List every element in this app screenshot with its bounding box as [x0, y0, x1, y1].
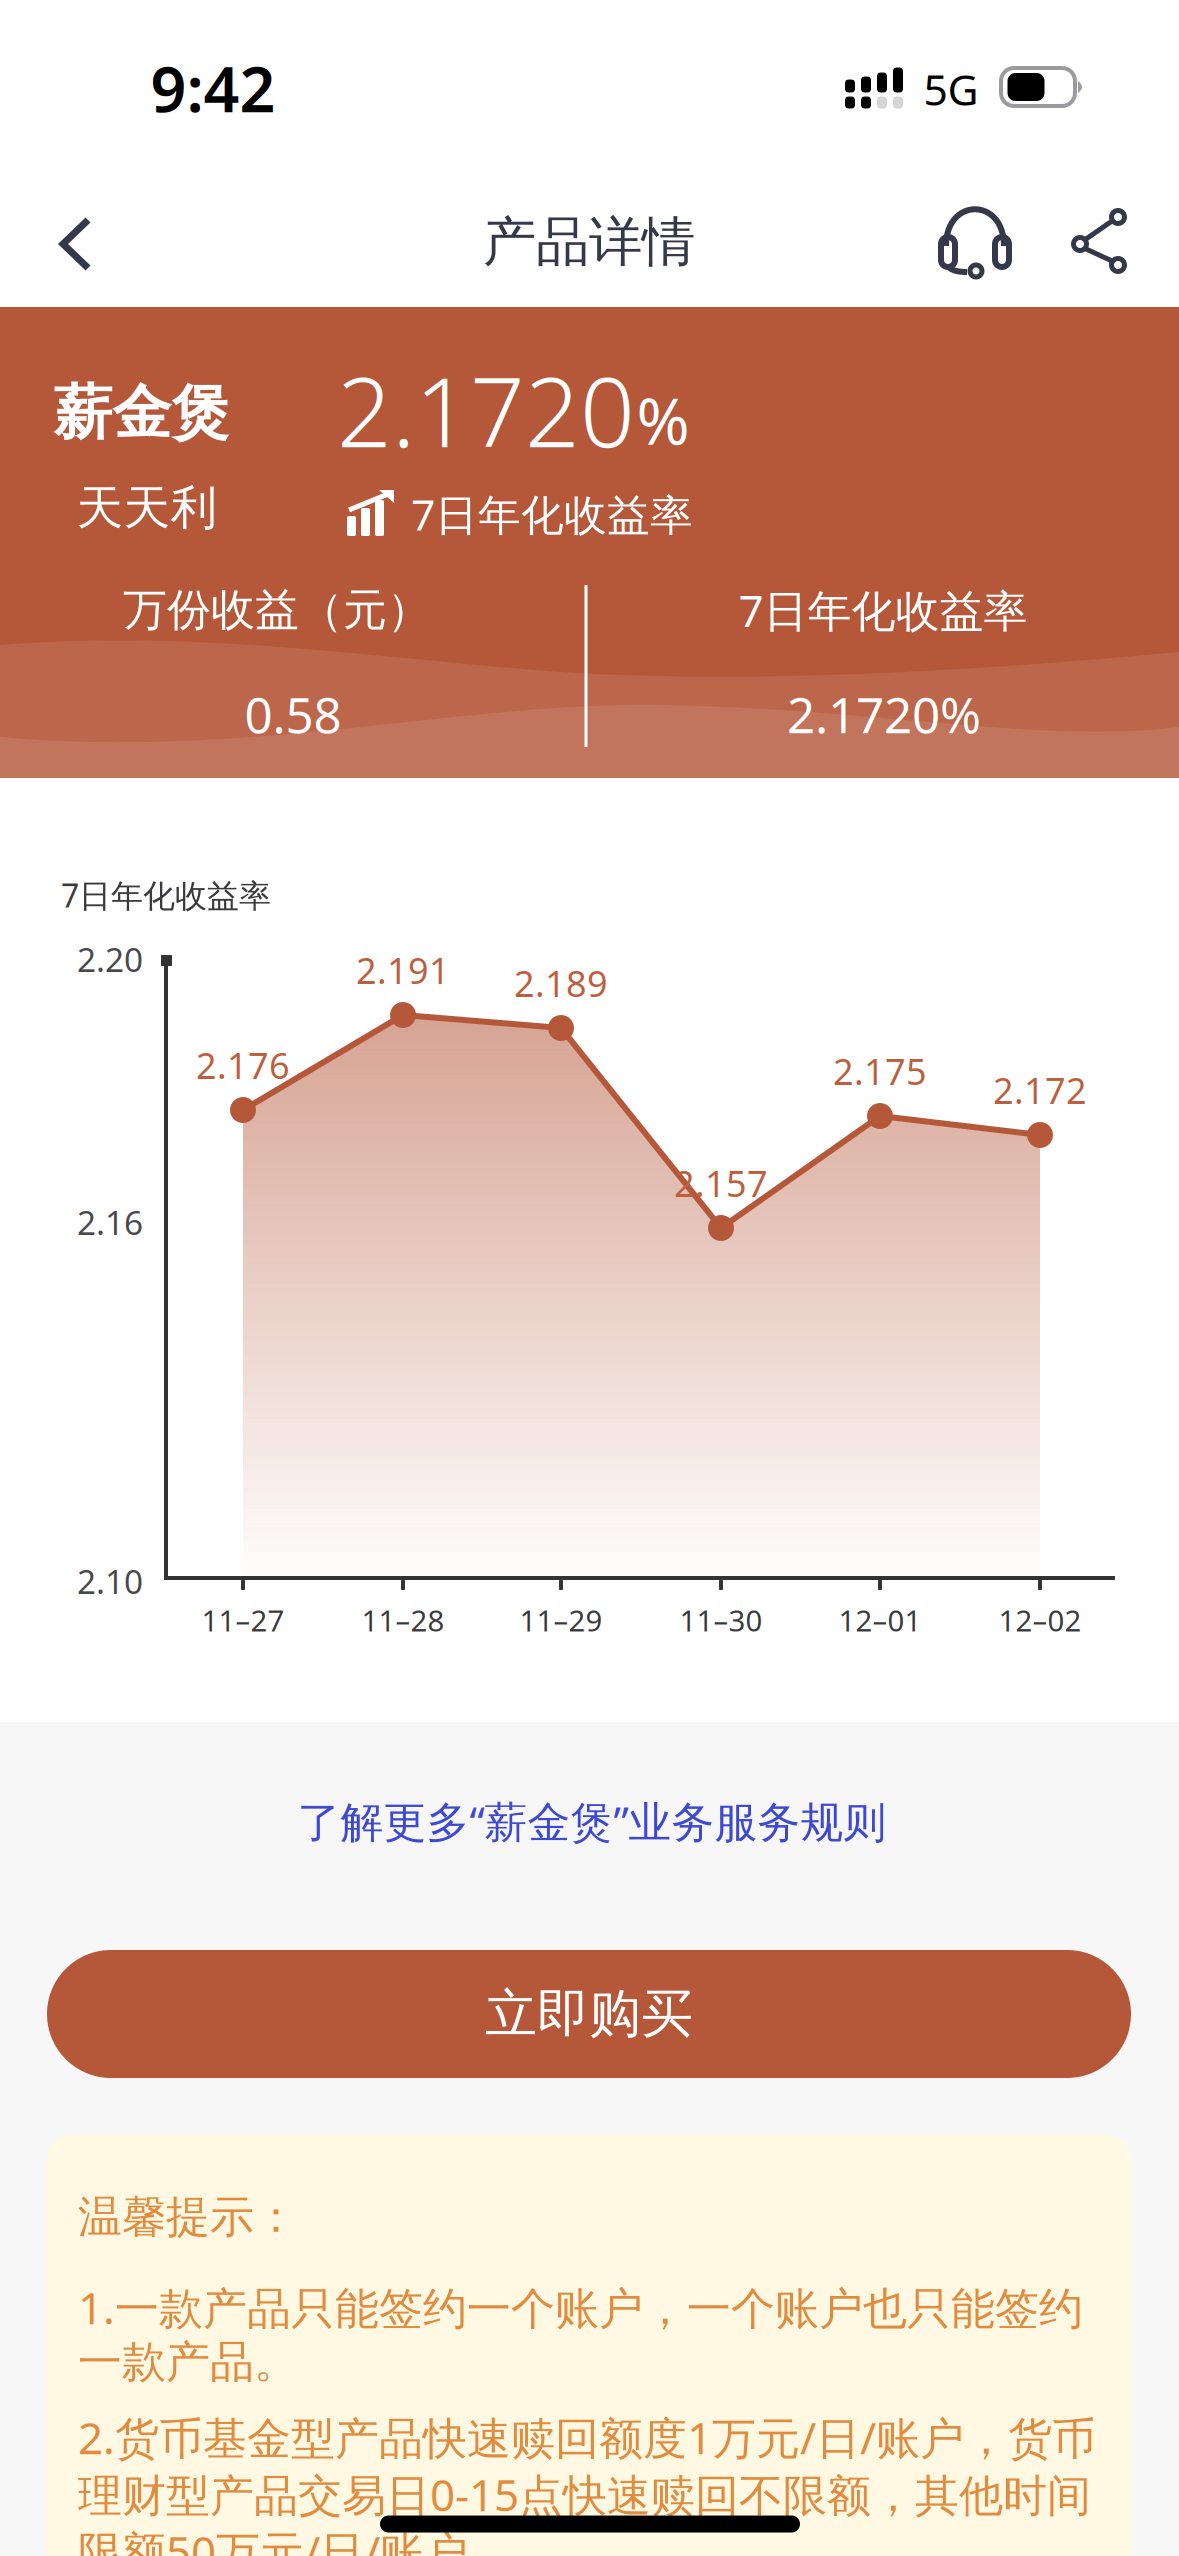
staticText: 11–27 — [201, 1600, 284, 1639]
staticText: 12–02 — [998, 1600, 1081, 1639]
staticText: 天天利 — [76, 479, 217, 537]
staticText: 限额50万元/日/账户 — [78, 2522, 468, 2556]
staticText: 2.货币基金型产品快速赎回额度1万元/日/账户，货币 — [78, 2408, 1096, 2466]
button[interactable]: Share — [1070, 208, 1130, 278]
staticText: 2.176 — [196, 1041, 290, 1089]
staticText: 11–28 — [361, 1600, 444, 1639]
button[interactable]: 立即购买 — [47, 1950, 1131, 2078]
staticText: 立即购买 — [485, 1982, 693, 2046]
staticText: 2.1720% — [787, 681, 981, 747]
staticText: 一款产品。 — [78, 2335, 298, 2389]
staticText: 12–01 — [838, 1600, 921, 1639]
staticText: 7日年化收益率 — [411, 486, 693, 542]
staticText: 5G — [923, 61, 978, 117]
staticText: 0.58 — [244, 681, 341, 747]
staticText: 11–29 — [519, 1600, 602, 1639]
button[interactable]: 了解更多“薪金煲”业务服务规则 — [297, 1793, 886, 1849]
staticText: 2.157 — [674, 1159, 768, 1207]
button[interactable]: Customer service — [939, 206, 1011, 278]
staticText: 2.172 — [993, 1066, 1087, 1114]
staticText: 7日年化收益率 — [61, 874, 271, 916]
staticText: 2.191 — [356, 946, 450, 994]
button[interactable]: Back — [59, 217, 93, 271]
staticText: 理财型产品交易日0-15点快速赎回不限额，其他时间 — [78, 2465, 1091, 2523]
staticText: 2.189 — [514, 959, 608, 1007]
staticText: 2.175 — [833, 1047, 927, 1095]
staticText: 2.1720 — [337, 346, 635, 474]
staticText: 2.16 — [77, 1200, 143, 1244]
staticText: 了解更多“薪金煲”业务服务规则 — [297, 1793, 886, 1849]
staticText: 11–30 — [679, 1600, 762, 1639]
staticText: 2.10 — [77, 1559, 143, 1603]
staticText: 万份收益（元） — [123, 583, 431, 637]
staticText: 2.20 — [77, 937, 143, 981]
staticText: 产品详情 — [483, 209, 695, 275]
staticText: 7日年化收益率 — [738, 581, 1027, 639]
staticText: 温馨提示： — [78, 2190, 298, 2244]
staticText: 9:42 — [150, 46, 275, 130]
staticText: 1.一款产品只能签约一个账户，一个账户也只能签约 — [78, 2278, 1083, 2336]
staticText: 薪金煲 — [53, 377, 230, 449]
staticText: % — [636, 377, 689, 462]
